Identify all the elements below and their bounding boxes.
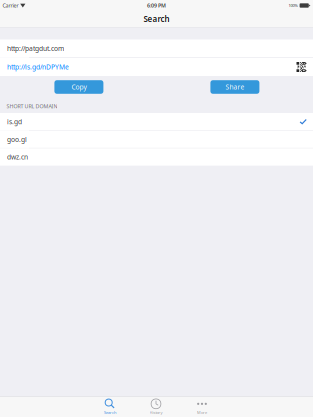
button[interactable]: Share: [210, 80, 259, 94]
button[interactable]: dwz.cn: [0, 148, 313, 166]
button[interactable]: Show QR code: [296, 58, 306, 75]
staticText: Search: [143, 14, 169, 24]
staticText: History: [149, 410, 162, 415]
staticText: Copy: [71, 83, 86, 91]
staticText: goo.gl: [7, 135, 27, 144]
staticText: 6:09 PM: [147, 2, 166, 9]
button[interactable]: goo.gl: [0, 131, 313, 148]
button[interactable]: Copy: [54, 80, 103, 94]
button[interactable]: Search: [87, 397, 133, 417]
staticText: 100%: [289, 3, 298, 8]
staticText: dwz.cn: [7, 153, 28, 161]
button[interactable]: History: [133, 397, 179, 417]
staticText: http://patgdut.com: [7, 44, 64, 53]
staticText: is.gd: [7, 117, 22, 126]
button[interactable]: More: [179, 397, 225, 417]
staticText: Carrier: [3, 2, 19, 9]
staticText: Search: [104, 410, 116, 415]
staticText: More: [197, 410, 207, 415]
staticText: SHORT URL DOMAIN: [6, 102, 57, 110]
button[interactable]: is.gd: [0, 113, 313, 130]
staticText: http://is.gd/nDPYMe: [7, 63, 69, 71]
staticText: Share: [225, 83, 244, 91]
